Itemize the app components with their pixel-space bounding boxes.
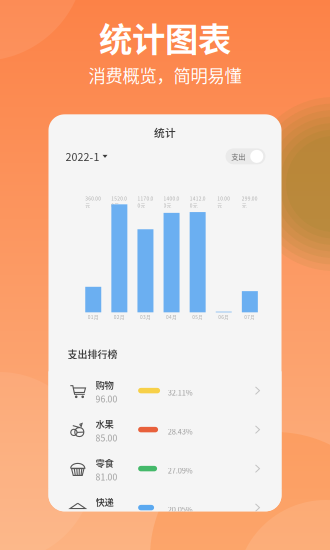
button[interactable]: 支出 bbox=[225, 148, 265, 164]
staticText: 299.00元 bbox=[242, 195, 258, 209]
staticText: 60.00 bbox=[95, 509, 117, 522]
staticText: 1412.00元 bbox=[190, 195, 206, 209]
staticText: 96.00 bbox=[95, 392, 117, 405]
staticText: 消费概览，简明易懂 bbox=[88, 62, 241, 87]
staticText: 快递 bbox=[95, 495, 113, 508]
staticText: 01月 bbox=[88, 313, 99, 320]
staticText: 04月 bbox=[166, 313, 177, 320]
staticText: 统计图表 bbox=[99, 13, 231, 61]
button[interactable]: 购物 bbox=[48, 371, 281, 410]
button[interactable]: 水果 bbox=[48, 410, 281, 449]
staticText: 360.00元 bbox=[85, 195, 101, 209]
staticText: 1520.00元 bbox=[111, 195, 127, 209]
staticText: 02月 bbox=[114, 313, 125, 320]
button[interactable]: 2022-1 bbox=[65, 147, 107, 165]
staticText: 1400.00元 bbox=[164, 195, 180, 209]
button[interactable]: 快递 bbox=[48, 488, 281, 527]
staticText: 27.09% bbox=[168, 465, 193, 476]
staticText: 05月 bbox=[192, 313, 203, 320]
staticText: 统计 bbox=[154, 125, 176, 140]
staticText: 85.00 bbox=[95, 431, 117, 444]
staticText: 07月 bbox=[244, 313, 255, 320]
staticText: 20.05% bbox=[168, 504, 193, 515]
staticText: 零食 bbox=[95, 456, 113, 469]
staticText: 32.11% bbox=[168, 387, 193, 398]
staticText: 2022-1 bbox=[65, 149, 99, 164]
staticText: 购物 bbox=[95, 378, 113, 391]
staticText: 06月 bbox=[218, 313, 229, 320]
staticText: 水果 bbox=[95, 417, 113, 430]
staticText: 81.00 bbox=[95, 470, 117, 483]
staticText: 10.00元 bbox=[217, 195, 230, 209]
staticText: 支出 bbox=[231, 151, 245, 162]
button[interactable]: 零食 bbox=[48, 449, 281, 488]
staticText: 03月 bbox=[140, 313, 151, 320]
staticText: 1170.00元 bbox=[137, 195, 153, 209]
staticText: 28.43% bbox=[168, 426, 193, 437]
staticText: 支出排行榜 bbox=[67, 347, 117, 361]
